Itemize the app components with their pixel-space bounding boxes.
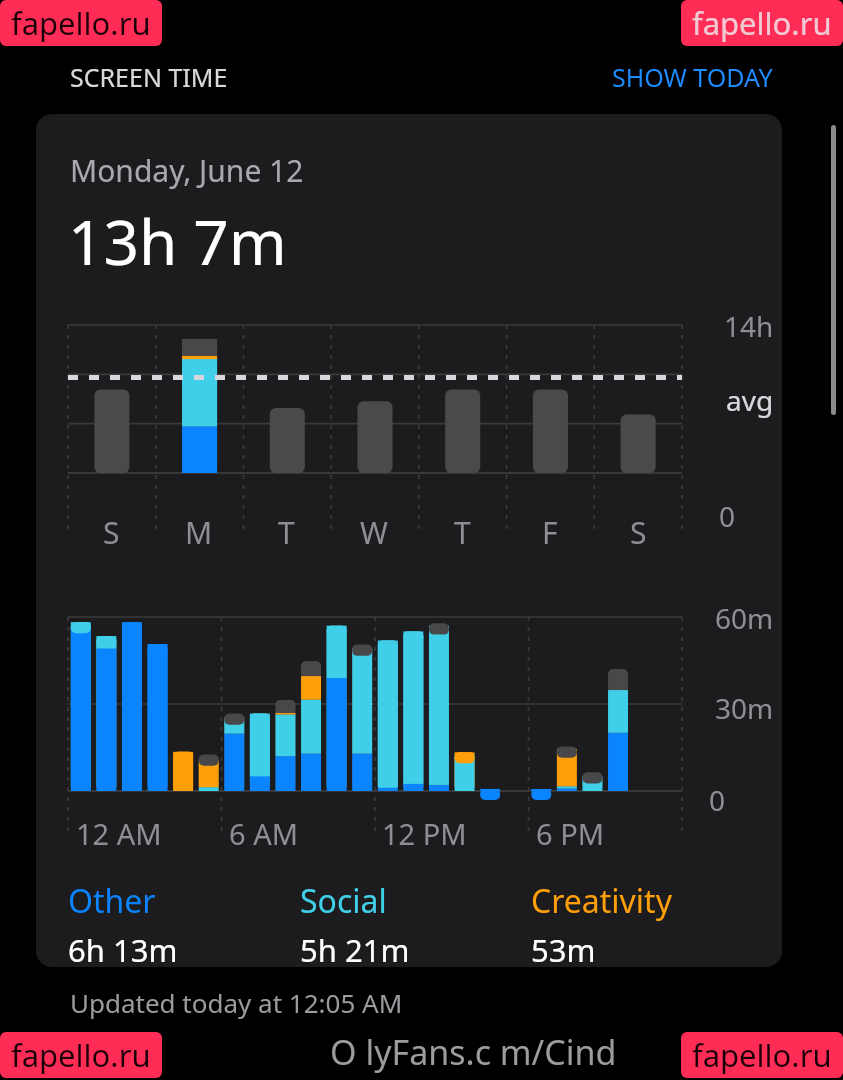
staticText: T	[454, 512, 471, 553]
staticText: SCREEN TIME	[70, 60, 228, 94]
button[interactable]: Creativity	[531, 879, 762, 967]
staticText: Monday, June 12	[70, 150, 304, 191]
staticText: fapello.ru	[692, 1034, 832, 1076]
staticText: 12 PM	[382, 814, 467, 853]
staticText: SHOW TODAY	[612, 60, 773, 94]
staticText: 6 AM	[229, 814, 298, 853]
button[interactable]: Monday, June 12	[36, 114, 782, 967]
staticText: 30m	[715, 689, 774, 727]
staticText: S	[630, 512, 647, 553]
staticText: 14h	[724, 307, 774, 345]
button[interactable]: Social	[300, 879, 531, 967]
staticText: M	[185, 512, 213, 553]
staticText: 13h 7m	[68, 199, 287, 283]
staticText: 53m	[531, 929, 596, 967]
staticText: F	[542, 512, 558, 553]
staticText: S	[103, 512, 120, 553]
staticText: 60m	[715, 599, 774, 637]
staticText: fapello.ru	[11, 2, 151, 44]
button[interactable]: Other	[68, 879, 300, 967]
staticText: 12 AM	[76, 814, 162, 853]
staticText: O lyFans.c m/Cind	[330, 1029, 617, 1075]
staticText: Updated today at 12:05 AM	[70, 985, 403, 1020]
staticText: 5h 21m	[300, 929, 410, 967]
staticText: Creativity	[531, 879, 672, 923]
staticText: Social	[300, 879, 387, 923]
staticText: fapello.ru	[11, 1034, 151, 1076]
staticText: Other	[68, 879, 156, 923]
staticText: T	[278, 512, 295, 553]
staticText: 0	[709, 781, 726, 819]
staticText: W	[360, 512, 388, 553]
staticText: fapello.ru	[692, 2, 832, 44]
staticText: 0	[719, 497, 736, 535]
staticText: avg	[726, 381, 774, 419]
staticText: 6h 13m	[68, 929, 178, 967]
staticText: 6 PM	[536, 814, 604, 853]
button[interactable]: SHOW TODAY	[612, 60, 773, 94]
